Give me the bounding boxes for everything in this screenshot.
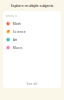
staticText: SUBJECTS	[5, 14, 16, 18]
button[interactable]: Music	[3, 44, 61, 52]
button[interactable]: Art	[3, 36, 61, 44]
staticText: Math	[13, 21, 21, 26]
staticText: Art	[13, 37, 17, 42]
button[interactable]: Math	[3, 20, 61, 28]
staticText: Music	[13, 45, 23, 50]
staticText: Explore multiple subjects	[10, 3, 53, 8]
button[interactable]: See all	[3, 81, 61, 87]
staticText: See all	[26, 82, 37, 86]
button[interactable]: Science	[3, 28, 61, 36]
staticText: Science	[13, 29, 26, 34]
